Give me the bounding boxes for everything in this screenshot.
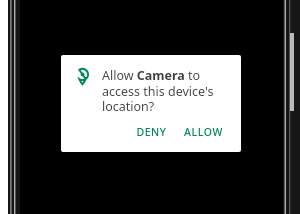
button[interactable]: ALLOW	[178, 121, 229, 143]
button[interactable]: DENY	[130, 121, 173, 143]
staticText: DENY	[136, 125, 167, 139]
staticText: Allow Camera to access this device's loc…	[102, 67, 231, 114]
staticText: ALLOW	[184, 125, 223, 139]
